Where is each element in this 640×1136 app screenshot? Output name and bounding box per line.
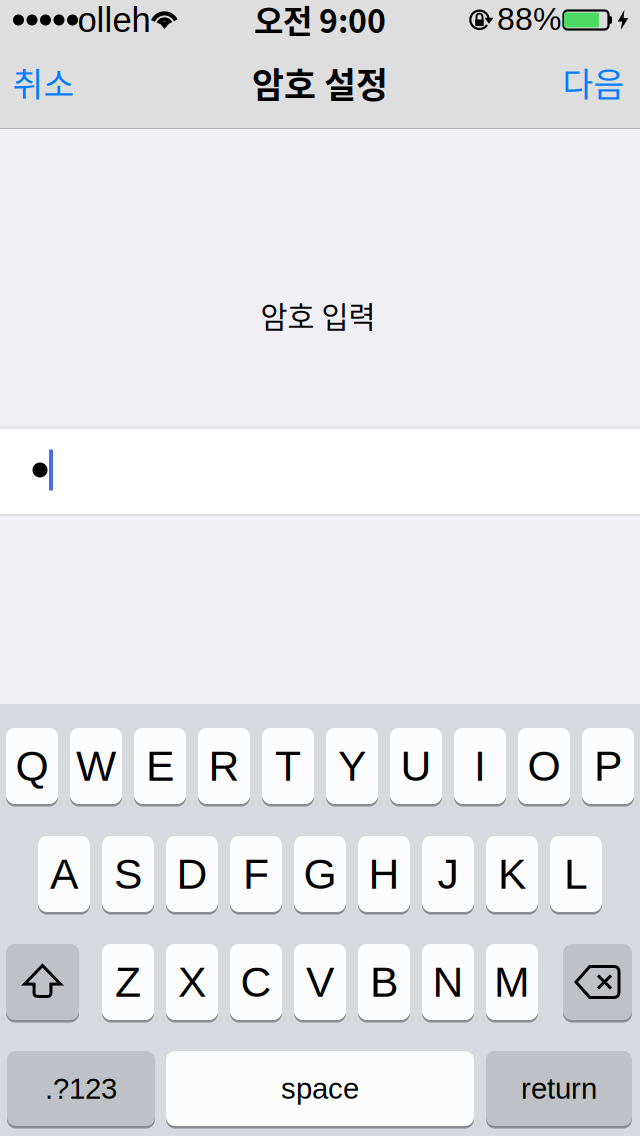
- button[interactable]: V: [294, 944, 346, 1020]
- button[interactable]: M: [486, 944, 538, 1020]
- staticText: J: [437, 850, 458, 898]
- button[interactable]: C: [230, 944, 282, 1020]
- button[interactable]: G: [294, 836, 346, 912]
- button[interactable]: Y: [326, 728, 378, 804]
- staticText: 암호 입력: [260, 294, 375, 336]
- button[interactable]: E: [134, 728, 186, 804]
- button[interactable]: .?123: [7, 1051, 155, 1126]
- staticText: T: [275, 742, 301, 790]
- button[interactable]: 취소: [0, 49, 87, 115]
- staticText: I: [474, 742, 486, 790]
- staticText: U: [400, 742, 431, 790]
- button[interactable]: H: [358, 836, 410, 912]
- staticText: R: [208, 742, 239, 790]
- button[interactable]: Z: [102, 944, 154, 1020]
- staticText: L: [564, 850, 588, 898]
- button[interactable]: T: [262, 728, 314, 804]
- button[interactable]: return: [486, 1051, 632, 1126]
- staticText: .?123: [45, 1072, 117, 1105]
- staticText: 암호 설정: [252, 58, 388, 108]
- button[interactable]: N: [422, 944, 474, 1020]
- staticText: C: [240, 958, 271, 1006]
- staticText: Z: [115, 958, 141, 1006]
- staticText: V: [306, 958, 334, 1006]
- staticText: W: [76, 742, 116, 790]
- button[interactable]: 다음: [549, 49, 637, 115]
- staticText: P: [594, 742, 622, 790]
- staticText: olleh: [77, 1, 150, 39]
- staticText: K: [498, 850, 526, 898]
- button[interactable]: I: [454, 728, 506, 804]
- button[interactable]: B: [358, 944, 410, 1020]
- staticText: E: [146, 742, 174, 790]
- button[interactable]: R: [198, 728, 250, 804]
- staticText: B: [370, 958, 398, 1006]
- staticText: 88%: [497, 1, 561, 37]
- staticText: A: [50, 850, 78, 898]
- staticText: G: [303, 850, 336, 898]
- button[interactable]: D: [166, 836, 218, 912]
- staticText: F: [243, 850, 269, 898]
- button[interactable]: A: [38, 836, 90, 912]
- staticText: space: [281, 1072, 359, 1105]
- staticText: N: [432, 958, 463, 1006]
- button[interactable]: X: [166, 944, 218, 1020]
- staticText: O: [527, 742, 560, 790]
- button[interactable]: K: [486, 836, 538, 912]
- button[interactable]: Delete: [563, 944, 632, 1020]
- staticText: M: [494, 958, 530, 1006]
- staticText: 취소: [12, 58, 74, 106]
- button[interactable]: F: [230, 836, 282, 912]
- button[interactable]: W: [70, 728, 122, 804]
- staticText: S: [114, 850, 142, 898]
- staticText: Y: [338, 742, 366, 790]
- staticText: D: [176, 850, 207, 898]
- staticText: H: [368, 850, 399, 898]
- button[interactable]: O: [518, 728, 570, 804]
- staticText: 오전 9:00: [254, 0, 386, 42]
- button[interactable]: Shift: [6, 944, 79, 1020]
- button[interactable]: space: [166, 1051, 474, 1126]
- staticText: return: [521, 1072, 597, 1105]
- staticText: Q: [15, 742, 48, 790]
- staticText: X: [178, 958, 206, 1006]
- button[interactable]: Q: [6, 728, 58, 804]
- button[interactable]: P: [582, 728, 634, 804]
- staticText: 다음: [562, 58, 624, 106]
- button[interactable]: U: [390, 728, 442, 804]
- button[interactable]: L: [550, 836, 602, 912]
- button[interactable]: S: [102, 836, 154, 912]
- button[interactable]: J: [422, 836, 474, 912]
